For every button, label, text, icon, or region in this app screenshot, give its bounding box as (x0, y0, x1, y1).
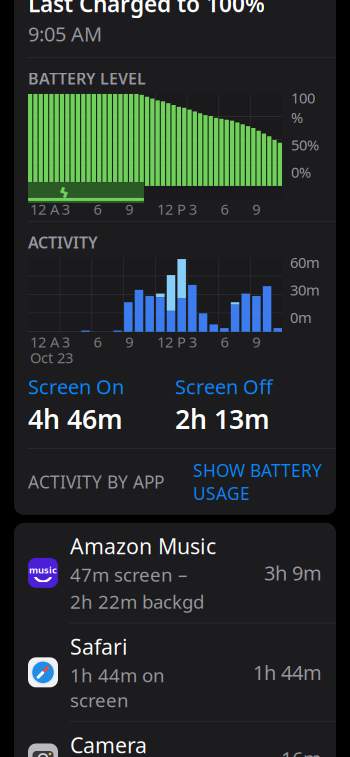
staticText: 12 P (157, 199, 186, 219)
staticText: 30m (290, 280, 320, 300)
button[interactable]: SHOW BATTERY USAGE (193, 459, 322, 505)
staticText: 9 (252, 332, 260, 352)
staticText: 12 A (30, 332, 59, 352)
staticText: 12 A (30, 199, 59, 219)
staticText: 9 (252, 199, 260, 219)
staticText: 6 (220, 199, 228, 219)
staticText: 9 (125, 332, 133, 352)
button[interactable]: music (14, 523, 336, 623)
staticText: 2h 13m (175, 401, 270, 436)
staticText: 1h 44m (253, 659, 322, 686)
staticText: 6 (93, 199, 101, 219)
staticText: 4h 46m (28, 401, 123, 436)
staticText: ACTIVITY BY APP (28, 470, 164, 493)
staticText: ACTIVITY (28, 232, 98, 253)
staticText: Safari (70, 632, 128, 661)
staticText: 16m (281, 745, 322, 757)
staticText: 50% (291, 135, 319, 154)
staticText: Screen On (28, 373, 124, 400)
staticText: 9:05 AM (28, 21, 102, 47)
staticText: Screen Off (175, 373, 273, 400)
staticText: 6 (93, 332, 101, 352)
staticText: 3 (189, 199, 197, 219)
staticText: 100% (291, 88, 315, 127)
staticText: 47m screen – (70, 562, 187, 587)
staticText: SHOW BATTERY USAGE (193, 459, 322, 505)
staticText: 3h 9m (264, 560, 322, 586)
staticText: 3 (189, 332, 197, 352)
button[interactable]: Camera (14, 722, 336, 757)
staticText: Camera (70, 731, 147, 757)
staticText: 3 (62, 332, 70, 352)
staticText: Amazon Music (70, 532, 216, 560)
staticText: BATTERY LEVEL (28, 68, 146, 89)
staticText: 0m (290, 307, 312, 327)
staticText: 3 (62, 199, 70, 219)
button[interactable]: Safari (14, 623, 336, 722)
staticText: 0% (291, 162, 311, 182)
staticText: 60m (290, 253, 320, 272)
staticText: Oct 23 (30, 348, 73, 367)
staticText: 9 (125, 199, 133, 219)
staticText: 2h 22m backgd (70, 589, 204, 614)
staticText: 6 (220, 332, 228, 352)
staticText: Last Charged to 100% (28, 0, 265, 19)
staticText: 1h 44m on screen (70, 663, 165, 712)
staticText: music (29, 564, 57, 576)
staticText: 12 P (157, 332, 186, 352)
